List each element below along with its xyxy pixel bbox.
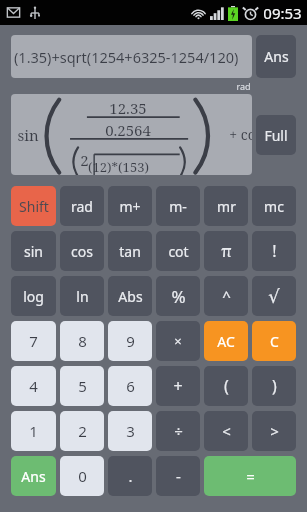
staticText: AC — [217, 332, 235, 351]
staticText: mc — [264, 197, 284, 216]
staticText: rad — [71, 197, 93, 216]
staticText: ln — [76, 287, 89, 306]
button[interactable]: √ — [252, 276, 296, 316]
staticText: sin — [17, 125, 39, 145]
staticText: > — [270, 421, 279, 441]
staticText: C — [270, 332, 279, 351]
button[interactable]: tan — [108, 231, 152, 271]
staticText: - — [176, 466, 181, 486]
staticText: 7 — [29, 331, 38, 351]
staticText: cot — [168, 242, 189, 261]
button[interactable]: cos — [60, 231, 104, 271]
staticText: (1.35)+sqrt(1254+6325-1254/120) — [14, 47, 239, 67]
button[interactable]: rad — [60, 186, 104, 226]
button[interactable]: Ans — [11, 456, 56, 496]
staticText: + co — [229, 125, 252, 144]
staticText: % — [171, 285, 186, 308]
staticText: Full — [264, 126, 288, 145]
button[interactable]: (1.35)+sqrt(1254+6325-1254/120) — [11, 35, 252, 78]
staticText: 5 — [78, 376, 87, 396]
button[interactable]: + — [156, 366, 200, 406]
button[interactable]: 1 — [11, 411, 56, 451]
staticText: sin — [24, 242, 43, 261]
staticText: 2 — [80, 150, 89, 170]
button[interactable]: 6 — [108, 366, 152, 406]
staticText: rad — [236, 80, 251, 92]
staticText: Ans — [264, 47, 289, 66]
staticText: π — [221, 240, 232, 262]
button[interactable]: 8 — [60, 321, 104, 361]
button[interactable]: Shift — [11, 186, 56, 226]
staticText: ^ — [222, 286, 231, 306]
button[interactable]: m+ — [108, 186, 152, 226]
button[interactable]: C — [252, 321, 296, 361]
staticText: √ — [268, 286, 280, 307]
staticText: m+ — [119, 197, 141, 216]
staticText: (12)*(153) — [88, 158, 149, 175]
button[interactable]: ) — [252, 366, 296, 406]
button[interactable]: mr — [204, 186, 248, 226]
button[interactable]: 0 — [60, 456, 104, 496]
button[interactable]: ÷ — [156, 411, 200, 451]
button[interactable]: - — [156, 456, 200, 496]
staticText: < — [222, 421, 231, 441]
button[interactable]: ! — [252, 231, 296, 271]
button[interactable]: AC — [204, 321, 248, 361]
button[interactable]: cot — [156, 231, 200, 271]
button[interactable]: 3 — [108, 411, 152, 451]
button[interactable]: = — [204, 456, 296, 496]
staticText: × — [174, 332, 182, 350]
staticText: ) — [272, 375, 277, 397]
staticText: 09:53 — [263, 3, 302, 23]
staticText: 4 — [29, 376, 38, 396]
staticText: ÷ — [174, 421, 183, 441]
button[interactable]: 9 — [108, 321, 152, 361]
staticText: Abs — [118, 287, 143, 306]
button[interactable]: mc — [252, 186, 296, 226]
button[interactable]: π — [204, 231, 248, 271]
button[interactable]: < — [204, 411, 248, 451]
button[interactable]: 7 — [11, 321, 56, 361]
staticText: cos — [71, 242, 93, 261]
button[interactable]: . — [108, 456, 152, 496]
staticText: 6 — [126, 376, 135, 396]
staticText: Shift — [19, 197, 49, 216]
staticText: . — [128, 466, 133, 486]
button[interactable]: m- — [156, 186, 200, 226]
button[interactable]: Abs — [108, 276, 152, 316]
staticText: 8 — [78, 331, 87, 351]
staticText: 1 — [29, 421, 38, 441]
staticText: 0.2564 — [105, 120, 151, 140]
staticText: 3 — [126, 421, 135, 441]
button[interactable]: × — [156, 321, 200, 361]
staticText: + — [173, 375, 183, 397]
button[interactable]: 4 — [11, 366, 56, 406]
button[interactable]: % — [156, 276, 200, 316]
button[interactable]: ln — [60, 276, 104, 316]
button[interactable]: ^ — [204, 276, 248, 316]
button[interactable]: 2 — [60, 411, 104, 451]
staticText: mr — [217, 197, 236, 216]
button[interactable]: sin — [11, 231, 56, 271]
staticText: m- — [169, 197, 187, 216]
button[interactable]: Ans — [256, 35, 296, 78]
staticText: ! — [272, 240, 277, 262]
staticText: 9 — [126, 331, 135, 351]
staticText: 0 — [78, 466, 87, 486]
button[interactable]: log — [11, 276, 56, 316]
button[interactable]: > — [252, 411, 296, 451]
button[interactable]: sin — [11, 94, 252, 175]
staticText: ( — [224, 375, 229, 397]
staticText: 2 — [78, 421, 87, 441]
button[interactable]: ( — [204, 366, 248, 406]
staticText: Ans — [21, 467, 46, 486]
staticText: = — [246, 466, 255, 486]
staticText: log — [23, 287, 44, 306]
staticText: tan — [119, 242, 141, 261]
button[interactable]: Full — [256, 115, 296, 155]
staticText: 12.35 — [109, 98, 147, 118]
button[interactable]: 5 — [60, 366, 104, 406]
